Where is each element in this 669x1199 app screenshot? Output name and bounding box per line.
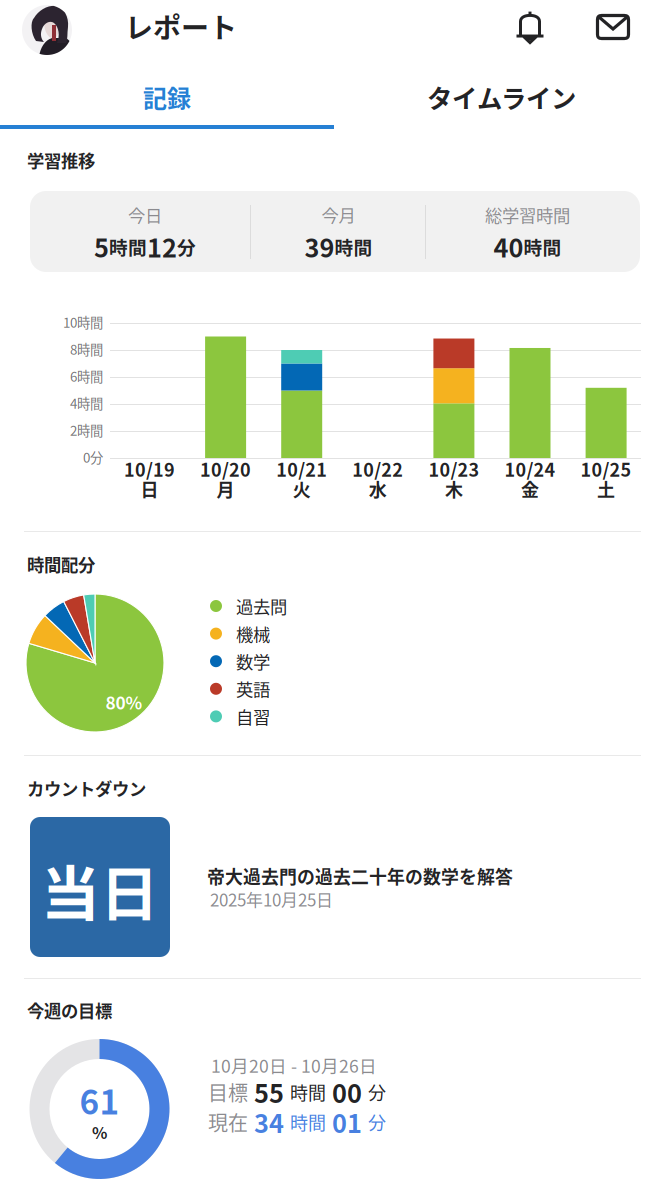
staticText: 土 xyxy=(597,476,615,502)
staticText: 分 xyxy=(368,1079,386,1105)
staticText: 時間 xyxy=(290,1079,326,1105)
staticText: 00 xyxy=(332,1074,362,1110)
staticText: 10/21 xyxy=(276,456,327,482)
staticText: 10/20 xyxy=(200,456,251,482)
staticText: 2時間 xyxy=(70,420,103,440)
staticText: 6時間 xyxy=(70,366,103,386)
staticText: 分 xyxy=(177,233,196,260)
staticText: 4時間 xyxy=(70,393,103,413)
staticText: 10/22 xyxy=(352,456,403,482)
staticText: 今月 xyxy=(321,202,355,227)
staticText: 34 xyxy=(254,1104,284,1140)
staticText: 10/25 xyxy=(581,456,632,482)
staticText: 時間 xyxy=(334,233,372,260)
button[interactable]: 記録 xyxy=(0,68,334,126)
button[interactable]: Messages xyxy=(590,4,636,50)
staticText: 40 xyxy=(493,228,523,265)
staticText: 学習推移 xyxy=(27,147,95,173)
staticText: 月 xyxy=(217,476,235,502)
staticText: 分 xyxy=(368,1109,386,1135)
staticText: 10月20日 - 10月26日 xyxy=(211,1052,377,1078)
button[interactable]: タイムライン xyxy=(334,68,669,126)
button[interactable]: Profile xyxy=(19,2,75,58)
staticText: 61 xyxy=(79,1076,119,1124)
staticText: 時間 xyxy=(523,233,561,260)
staticText: 木 xyxy=(445,476,463,502)
staticText: 記録 xyxy=(143,80,191,114)
staticText: 水 xyxy=(369,476,387,502)
staticText: 目標 xyxy=(208,1077,248,1106)
staticText: 10時間 xyxy=(63,312,103,332)
button[interactable]: Notifications xyxy=(507,3,553,49)
staticText: 12 xyxy=(147,228,177,265)
staticText: 2025年10月25日 xyxy=(210,887,333,911)
staticText: 当日 xyxy=(41,847,159,932)
staticText: 日 xyxy=(140,476,158,502)
staticText: 10/19 xyxy=(124,456,175,482)
staticText: 時間 xyxy=(109,233,147,260)
staticText: 0分 xyxy=(83,447,103,467)
staticText: 01 xyxy=(332,1104,362,1140)
staticText: 英語 xyxy=(236,676,270,701)
staticText: 55 xyxy=(254,1074,284,1110)
staticText: 火 xyxy=(293,476,311,502)
staticText: 時間 xyxy=(290,1109,326,1135)
staticText: レポート xyxy=(125,6,237,46)
staticText: 8時間 xyxy=(70,339,103,359)
staticText: 5 xyxy=(94,228,109,265)
staticText: 現在 xyxy=(208,1107,248,1136)
staticText: 自習 xyxy=(236,704,270,729)
button[interactable]: 当日 帝大過去門の過去二十年の数学を解答 xyxy=(30,817,170,957)
staticText: 総学習時間 xyxy=(485,202,570,227)
staticText: 10/24 xyxy=(504,456,555,482)
staticText: 時間配分 xyxy=(27,551,95,577)
staticText: カウントダウン xyxy=(27,775,146,801)
staticText: 39 xyxy=(304,228,334,265)
staticText: 金 xyxy=(521,476,539,502)
staticText: 機械 xyxy=(236,621,270,646)
staticText: 10/23 xyxy=(428,456,479,482)
staticText: 過去問 xyxy=(236,593,287,619)
staticText: 帝大過去門の過去二十年の数学を解答 xyxy=(207,863,513,889)
staticText: 数学 xyxy=(236,649,270,674)
staticText: 今日 xyxy=(128,202,162,227)
staticText: 今週の目標 xyxy=(27,997,112,1023)
staticText: % xyxy=(92,1120,107,1144)
staticText: 80% xyxy=(105,689,142,715)
staticText: タイムライン xyxy=(427,79,576,115)
